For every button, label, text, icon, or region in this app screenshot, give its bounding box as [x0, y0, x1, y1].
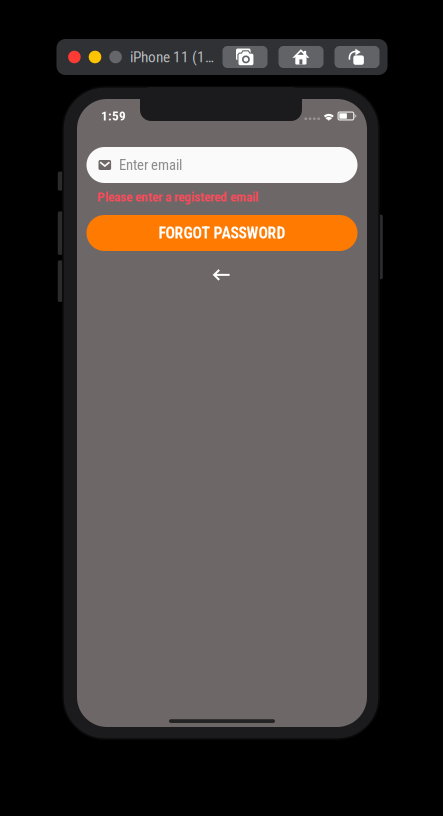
button[interactable]: Home — [278, 46, 323, 68]
button[interactable]: Zoom — [109, 51, 122, 63]
button[interactable]: Screenshot — [222, 46, 267, 68]
button[interactable]: Enter email — [86, 147, 357, 183]
button[interactable]: Close — [68, 51, 81, 63]
button[interactable]: FORGOT PASSWORD — [86, 215, 357, 251]
staticText: Please enter a registered email — [97, 189, 258, 205]
staticText: 1:59 — [101, 108, 126, 124]
button[interactable]: Back — [202, 266, 242, 284]
staticText: FORGOT PASSWORD — [158, 224, 285, 242]
staticText: iPhone 11 (1… — [130, 48, 214, 66]
button[interactable]: Minimise — [89, 51, 101, 63]
staticText: Enter email — [119, 156, 182, 174]
button[interactable]: Rotate — [334, 46, 379, 68]
